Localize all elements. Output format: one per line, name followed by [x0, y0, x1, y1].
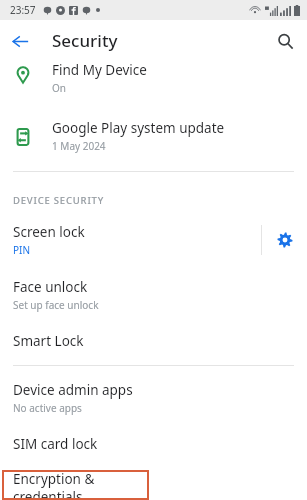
staticText: Face unlock	[13, 278, 88, 296]
button[interactable]: Smart Lock	[0, 331, 307, 351]
staticText: Find My Device	[52, 61, 147, 79]
button[interactable]: Device admin apps	[0, 380, 307, 416]
staticText: Screen lock	[13, 223, 85, 241]
staticText: Device admin apps	[13, 381, 133, 399]
staticText: 1 May 2024	[52, 139, 106, 153]
button[interactable]: Screen lock	[0, 221, 261, 259]
staticText: 23:57	[10, 3, 36, 17]
button[interactable]: SIM card lock	[0, 434, 307, 454]
button[interactable]: Screen lock settings	[262, 221, 307, 259]
staticText: PIN	[13, 243, 31, 257]
button[interactable]: Face unlock	[0, 277, 307, 313]
button[interactable]: Search	[270, 26, 300, 56]
button[interactable]: Find My Device	[0, 61, 307, 103]
staticText: Smart Lock	[13, 332, 84, 350]
button[interactable]: Google Play system update	[0, 112, 307, 160]
staticText: Set up face unlock	[13, 298, 99, 312]
staticText: SIM card lock	[13, 435, 98, 453]
button[interactable]: Back	[6, 27, 34, 55]
staticText: No active apps	[13, 401, 82, 415]
staticText: Encryption & credentials	[13, 470, 149, 500]
staticText: Security	[52, 29, 118, 52]
staticText: On	[52, 81, 66, 95]
staticText: Google Play system update	[52, 119, 225, 137]
button[interactable]: Encryption & credentials	[2, 470, 149, 500]
staticText: DEVICE SECURITY	[13, 194, 105, 207]
